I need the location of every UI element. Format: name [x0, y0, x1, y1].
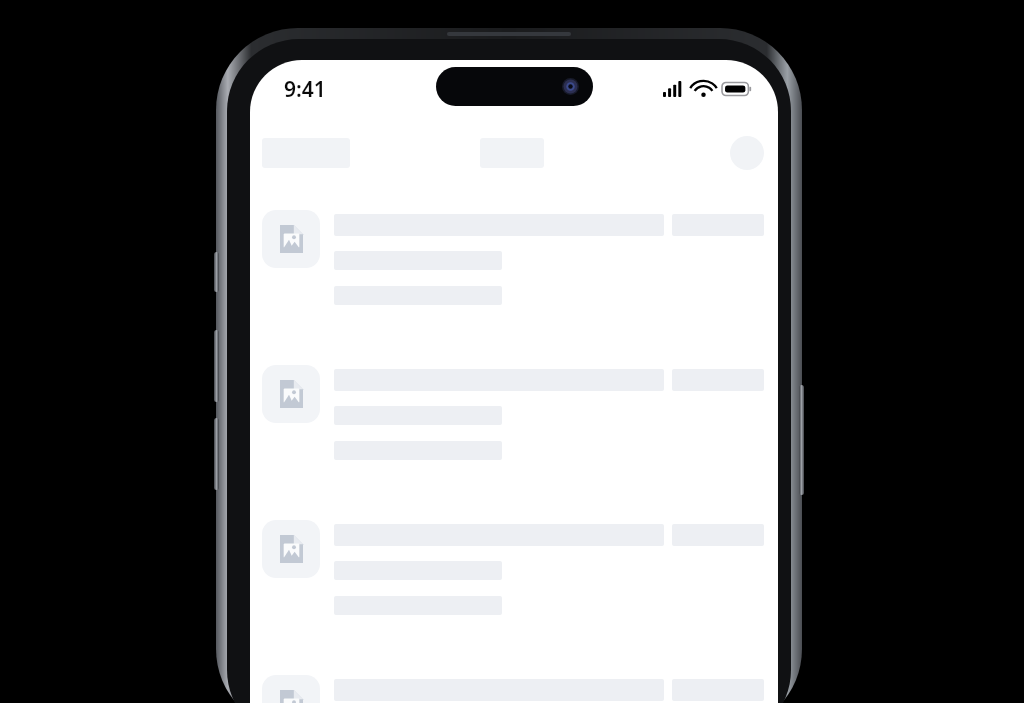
- other: Image placeholder: [262, 210, 320, 268]
- button[interactable]: Image placeholder: [262, 365, 764, 460]
- other: Image placeholder: [262, 365, 320, 423]
- button[interactable]: Profile: [730, 136, 764, 170]
- other: Image placeholder: [262, 675, 320, 703]
- button[interactable]: Image placeholder: [262, 675, 764, 703]
- other: Image placeholder: [262, 520, 320, 578]
- button[interactable]: Image placeholder: [262, 520, 764, 615]
- button[interactable]: Image placeholder: [262, 210, 764, 305]
- staticText: 9:41: [284, 75, 326, 104]
